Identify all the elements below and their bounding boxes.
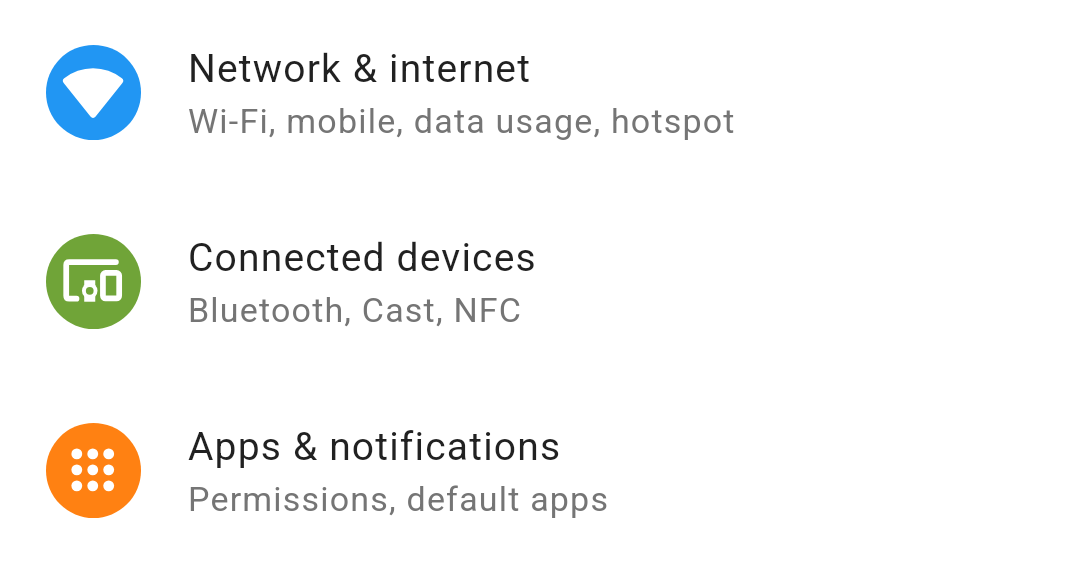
button[interactable]: Connected devices settings xyxy=(0,207,1066,357)
staticText: Bluetooth, Cast, NFC xyxy=(188,290,523,330)
staticText: Wi-Fi, mobile, data usage, hotspot xyxy=(188,101,736,141)
staticText: Permissions, default apps xyxy=(188,479,610,519)
staticText: Connected devices xyxy=(188,235,537,281)
button[interactable]: Network and internet settings xyxy=(0,18,1066,168)
button[interactable]: Apps and notifications settings xyxy=(0,396,1066,546)
staticText: Apps & notifications xyxy=(188,424,562,470)
staticText: Network & internet xyxy=(188,46,532,92)
